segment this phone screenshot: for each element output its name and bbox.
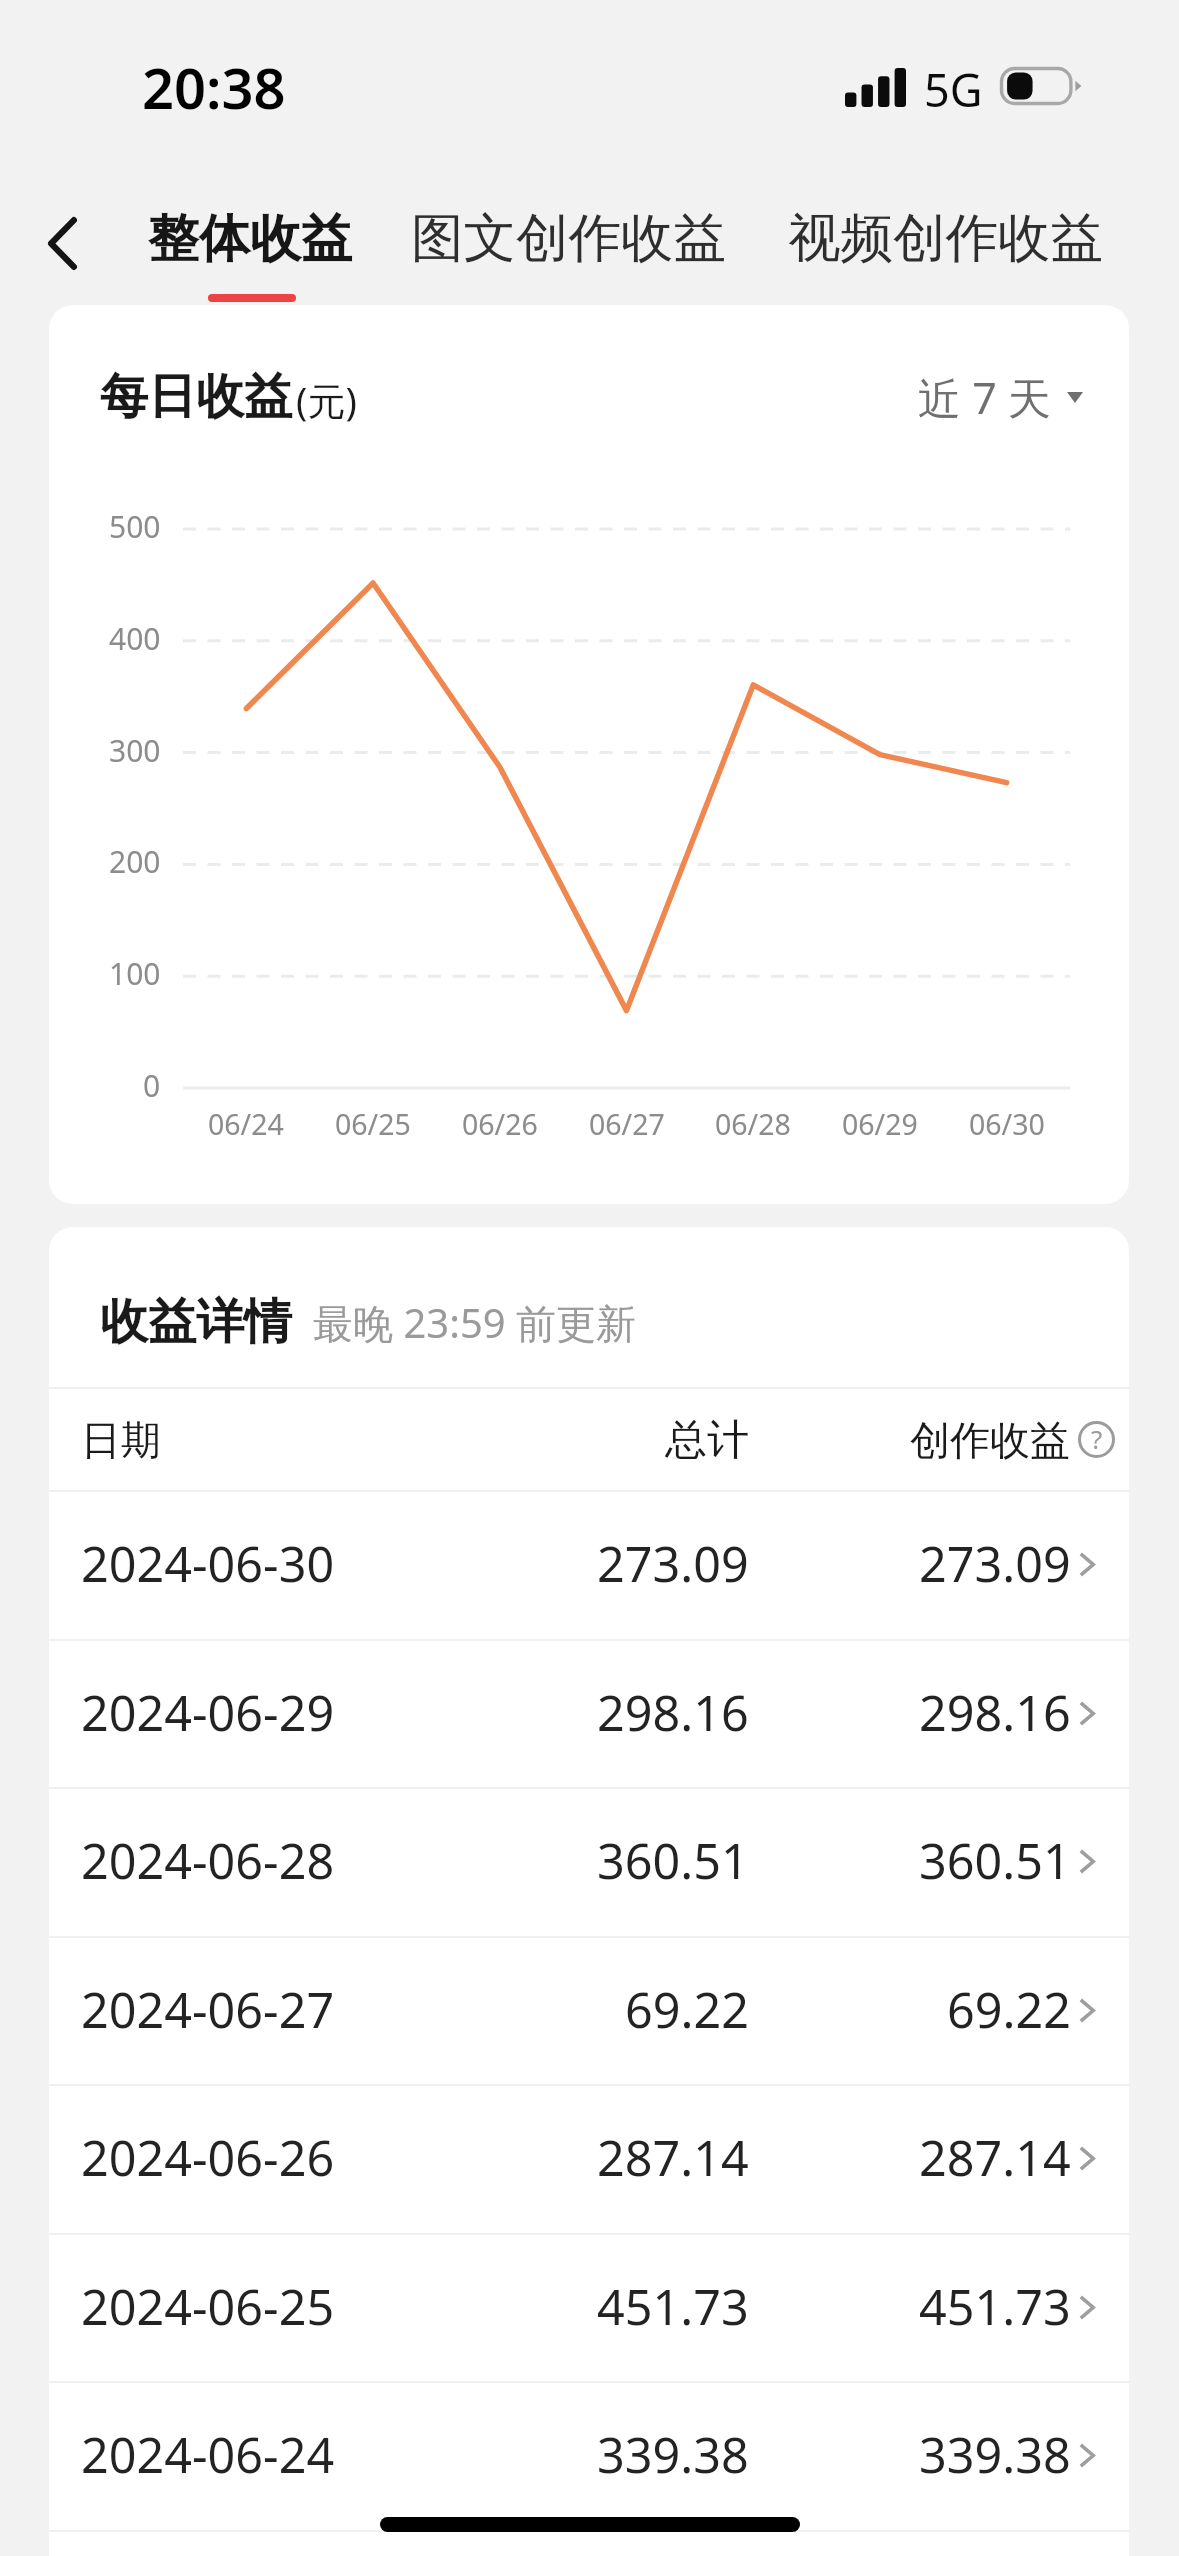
button[interactable]: Help about creation earnings [1078,1421,1115,1458]
staticText: 300 [109,730,161,771]
staticText: 近 7 天 [918,368,1051,427]
staticText: 400 [109,618,161,659]
staticText: 06/30 [969,1105,1045,1144]
staticText: 图文创作收益 [411,205,726,271]
staticText: 创作收益 [910,1415,1070,1465]
staticText: 5G [924,59,983,120]
staticText: 500 [109,506,161,547]
staticText: 总计 [665,1414,749,1467]
staticText: 06/28 [715,1105,791,1144]
staticText: 06/26 [462,1105,538,1144]
button[interactable]: 图文创作收益 [400,182,740,302]
staticText: 69.22 [625,1976,749,2042]
button[interactable]: 视频创作收益 [776,182,1116,302]
staticText: 273.09 [597,1530,749,1596]
staticText: 2024-06-30 [81,1530,335,1596]
staticText: ? [1091,1421,1103,1456]
staticText: 451.73 [597,2273,749,2339]
button[interactable]: 2024-06-26 [49,2084,1129,2233]
staticText: 每日收益 [100,367,292,427]
button[interactable]: 2024-06-25 [49,2233,1129,2382]
staticText: 2024-06-24 [81,2421,335,2487]
staticText: 06/29 [842,1105,918,1144]
staticText: 100 [109,953,161,994]
staticText: 339.38 [597,2421,749,2487]
staticText: 2024-06-29 [81,1679,335,1745]
staticText: 20:38 [142,49,286,125]
button[interactable]: 2024-06-28 [49,1787,1129,1936]
staticText: 273.09 [919,1530,1071,1596]
staticText: 2024-06-26 [81,2124,335,2190]
staticText: 287.14 [919,2124,1071,2190]
staticText: 0 [143,1065,161,1106]
button[interactable]: 整体收益 [140,182,360,302]
staticText: 200 [109,841,161,882]
staticText: 69.22 [947,1976,1071,2042]
button[interactable]: 2024-06-24 [49,2381,1129,2530]
staticText: 2024-06-28 [81,1827,335,1893]
staticText: (元) [296,374,357,426]
staticText: 06/27 [589,1105,665,1144]
staticText: 298.16 [919,1679,1071,1745]
staticText: 360.51 [597,1827,749,1893]
staticText: 298.16 [597,1679,749,1745]
staticText: 收益详情 [100,1292,292,1352]
staticText: 451.73 [919,2273,1071,2339]
staticText: 360.51 [919,1827,1071,1893]
staticText: 287.14 [597,2124,749,2190]
button[interactable]: 2024-06-30 [49,1490,1129,1639]
staticText: 最晚 23:59 前更新 [313,1295,637,1350]
staticText: 06/25 [335,1105,411,1144]
staticText: 2024-06-25 [81,2273,335,2339]
button[interactable]: 近 7 天 [918,368,1083,427]
staticText: 2024-06-27 [81,1976,335,2042]
button[interactable]: Back [8,188,116,298]
staticText: 06/24 [208,1105,284,1144]
staticText: 视频创作收益 [788,205,1103,271]
button[interactable]: 2024-06-29 [49,1639,1129,1788]
staticText: 整体收益 [148,207,352,271]
staticText: 日期 [81,1415,161,1465]
staticText: 339.38 [919,2421,1071,2487]
button[interactable]: 2024-06-27 [49,1936,1129,2085]
